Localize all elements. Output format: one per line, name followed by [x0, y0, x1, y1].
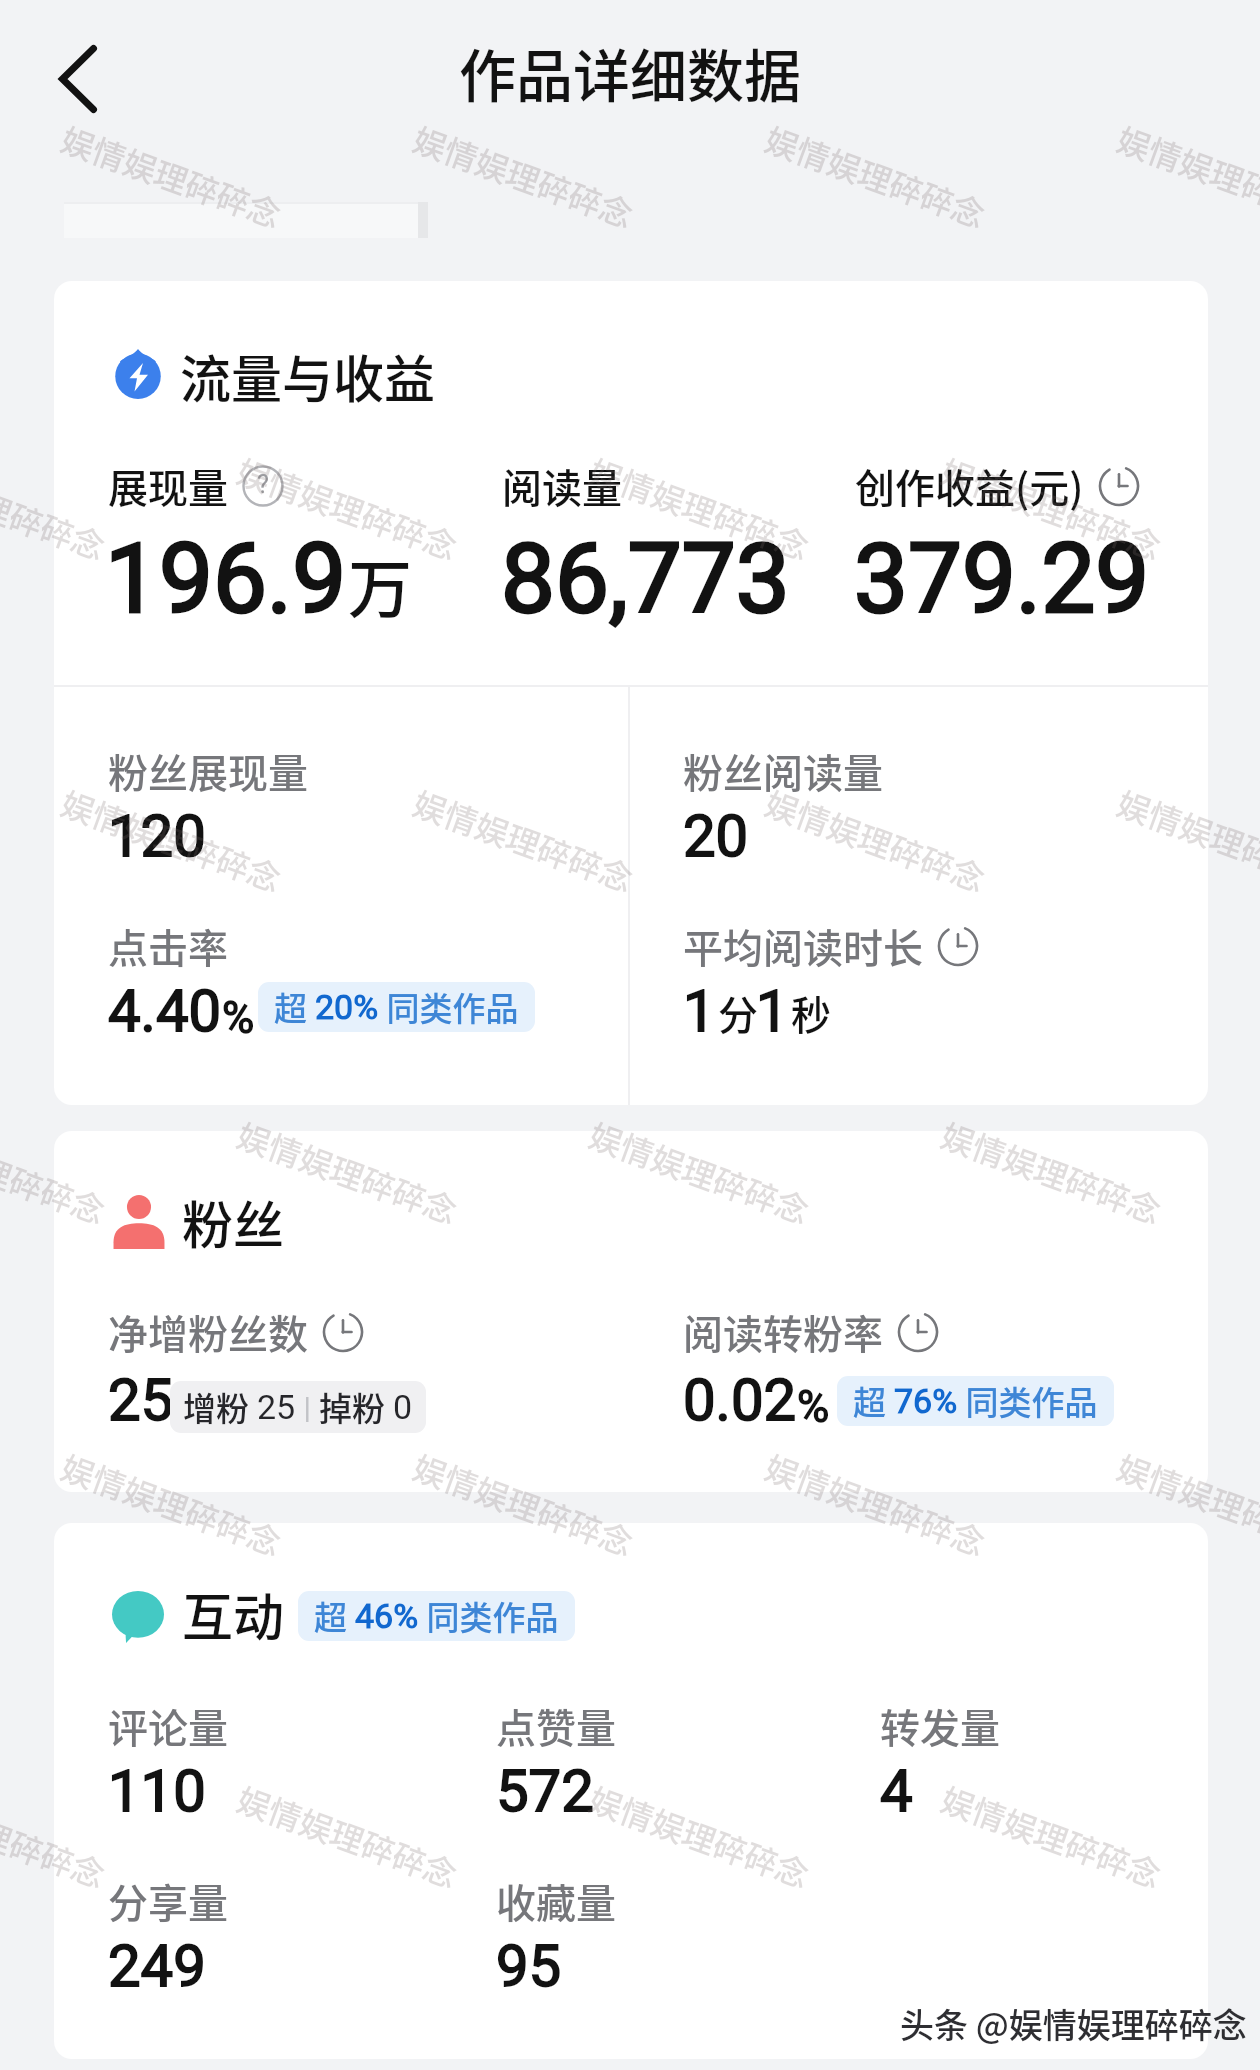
staticText: 万	[348, 538, 412, 631]
button[interactable]: 超	[853, 1377, 1098, 1425]
button[interactable]: 增粉	[183, 1383, 413, 1431]
staticText: 同类作品	[419, 1592, 559, 1640]
staticText: 分享量	[108, 1872, 228, 1930]
staticText: 同类作品	[379, 983, 519, 1031]
staticText: 平均阅读时长	[683, 917, 923, 975]
staticText: 249	[108, 1932, 206, 2000]
staticText: 创作收益(元)	[855, 457, 1084, 515]
staticText: 196.9	[105, 523, 347, 636]
staticText: 超	[274, 983, 315, 1031]
staticText: 46%	[355, 1596, 419, 1636]
staticText: 76%	[894, 1381, 958, 1421]
staticText: 作品详细数据	[0, 31, 1260, 114]
staticText: 展现量	[108, 457, 228, 515]
staticText: 掉粉	[319, 1383, 393, 1431]
staticText: 转发量	[880, 1697, 1000, 1755]
button[interactable]: Back	[36, 34, 120, 124]
staticText: 120	[108, 802, 206, 870]
staticText: 95	[496, 1932, 562, 2000]
staticText: 点击率	[108, 917, 228, 975]
staticText: 0	[393, 1387, 413, 1427]
staticText: 头条 @娱情娱理碎碎念	[900, 1999, 1247, 2048]
staticText: 阅读转粉率	[683, 1303, 883, 1361]
staticText: 增粉	[183, 1383, 257, 1431]
staticText: 20	[683, 802, 749, 870]
staticText: 25	[257, 1387, 296, 1427]
staticText: 110	[108, 1757, 206, 1825]
staticText: 超	[853, 1377, 894, 1425]
staticText: 阅读量	[502, 457, 622, 515]
staticText: 572	[496, 1757, 594, 1825]
staticText: %	[222, 992, 255, 1044]
staticText: 25	[108, 1366, 174, 1434]
staticText: 379.29	[854, 523, 1150, 636]
staticText: 流量与收益	[180, 339, 436, 413]
staticText: 粉丝	[182, 1185, 285, 1259]
staticText: 0.02	[683, 1366, 797, 1434]
staticText: 粉丝展现量	[108, 742, 308, 800]
staticText: 同类作品	[958, 1377, 1098, 1425]
staticText: 86,773	[501, 523, 790, 636]
staticText: 评论量	[108, 1697, 228, 1755]
staticText: %	[797, 1381, 830, 1433]
staticText: 1	[683, 977, 716, 1045]
button[interactable]: 超	[274, 983, 519, 1031]
staticText: 4.40	[108, 977, 222, 1045]
staticText: 20%	[315, 987, 379, 1027]
button[interactable]: 超	[314, 1592, 559, 1640]
staticText: 点赞量	[496, 1697, 616, 1755]
staticText: 粉丝阅读量	[683, 742, 883, 800]
staticText: 4	[880, 1757, 913, 1825]
staticText: ?	[257, 470, 269, 500]
staticText: 收藏量	[496, 1872, 616, 1930]
staticText: 互动	[182, 1577, 285, 1651]
staticText: 1	[756, 977, 789, 1045]
staticText: 超	[314, 1592, 355, 1640]
staticText: 秒	[791, 984, 831, 1042]
staticText: 净增粉丝数	[108, 1303, 308, 1361]
staticText: 分	[718, 984, 758, 1042]
staticText: |	[296, 1390, 319, 1425]
